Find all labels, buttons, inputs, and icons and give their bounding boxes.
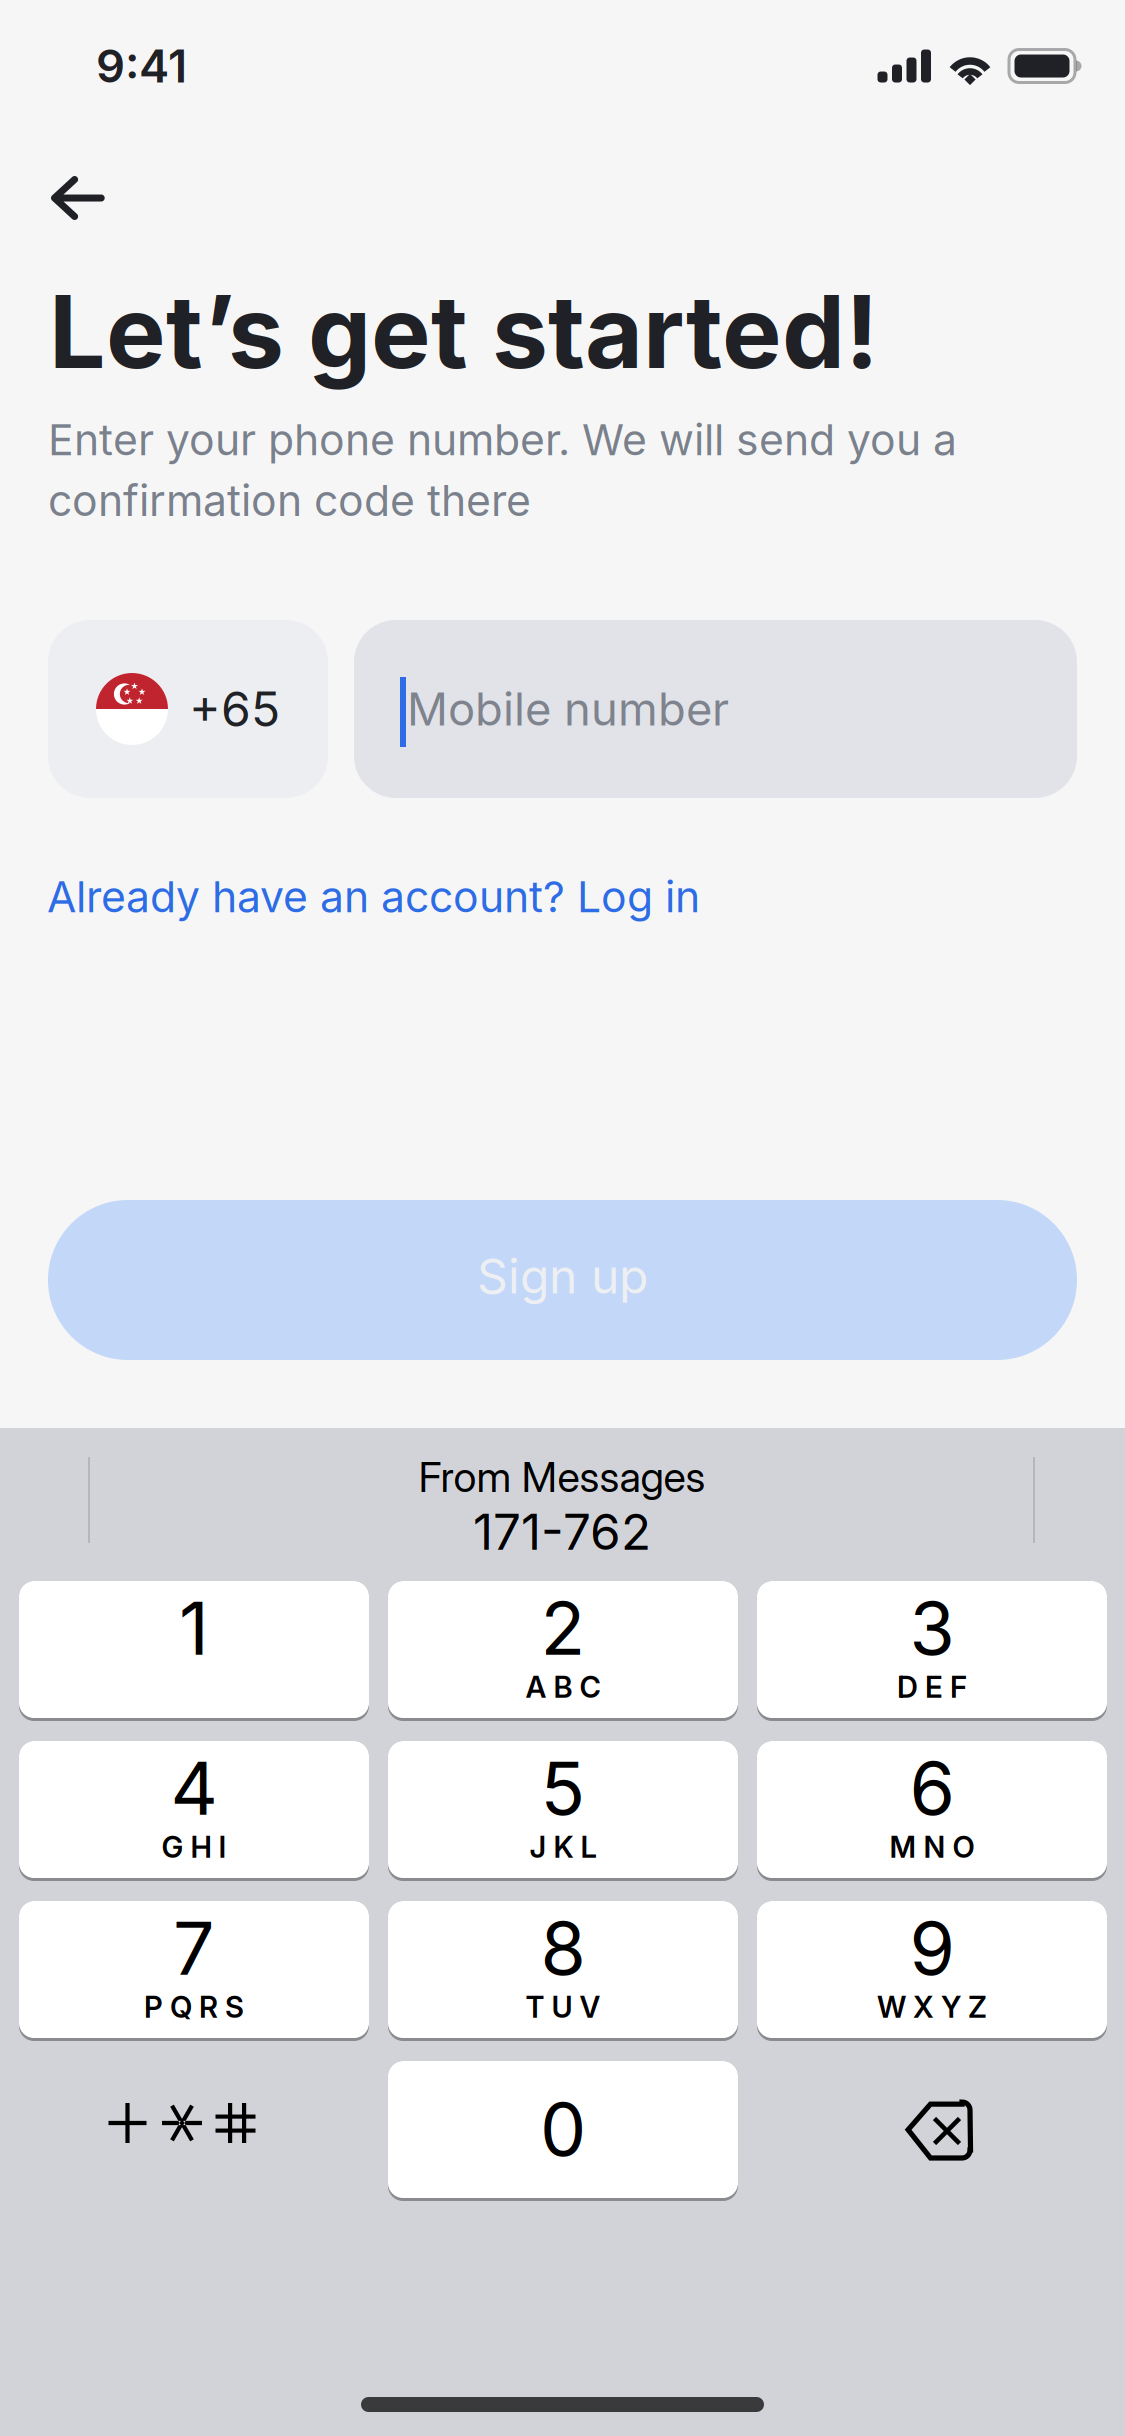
staticText: 8: [540, 1904, 585, 1992]
button[interactable]: 3: [757, 1581, 1107, 1721]
staticText: Mobile number: [407, 682, 729, 736]
button[interactable]: 0: [388, 2061, 738, 2201]
staticText: 0: [540, 2085, 586, 2173]
button[interactable]: 2: [388, 1581, 738, 1721]
button[interactable]: Already have an account? Log in: [47, 871, 747, 941]
staticText: 2: [540, 1584, 585, 1672]
staticText: 9: [909, 1904, 954, 1992]
button[interactable]: Sign up: [48, 1200, 1077, 1360]
staticText: Sign up: [477, 1247, 648, 1305]
staticText: W X Y Z: [877, 1989, 987, 2025]
button[interactable]: Plus star hash: [19, 2061, 369, 2201]
staticText: 3: [909, 1584, 954, 1672]
staticText: D E F: [897, 1669, 967, 1705]
staticText: +65: [189, 680, 280, 738]
button[interactable]: From Messages: [262, 1452, 862, 1572]
button[interactable]: Delete: [757, 2061, 1107, 2201]
button[interactable]: 4: [19, 1741, 369, 1881]
button[interactable]: 8: [388, 1901, 738, 2041]
button[interactable]: 1: [19, 1581, 369, 1721]
staticText: Already have an account? Log in: [47, 871, 700, 923]
staticText: A B C: [525, 1669, 600, 1705]
staticText: 9:41: [96, 39, 187, 93]
staticText: 4: [170, 1744, 217, 1832]
staticText: From Messages: [418, 1452, 705, 1502]
staticText: M N O: [889, 1829, 974, 1865]
staticText: 6: [909, 1744, 954, 1832]
staticText: Enter your phone number. We will send yo…: [48, 414, 957, 526]
button[interactable]: 5: [388, 1741, 738, 1881]
button[interactable]: Back: [0, 143, 150, 253]
button[interactable]: Mobile number: [354, 620, 1077, 798]
button[interactable]: 6: [757, 1741, 1107, 1881]
staticText: J K L: [529, 1829, 596, 1865]
button[interactable]: 7: [19, 1901, 369, 2041]
staticText: 7: [173, 1904, 215, 1992]
staticText: G H I: [161, 1829, 226, 1865]
staticText: Let’s get started!: [49, 271, 879, 392]
staticText: P Q R S: [144, 1989, 244, 2025]
staticText: 5: [540, 1744, 585, 1832]
staticText: 171-762: [473, 1502, 651, 1562]
button[interactable]: 9: [757, 1901, 1107, 2041]
staticText: T U V: [525, 1989, 600, 2025]
button[interactable]: +65: [48, 620, 328, 798]
staticText: 1: [179, 1584, 209, 1672]
